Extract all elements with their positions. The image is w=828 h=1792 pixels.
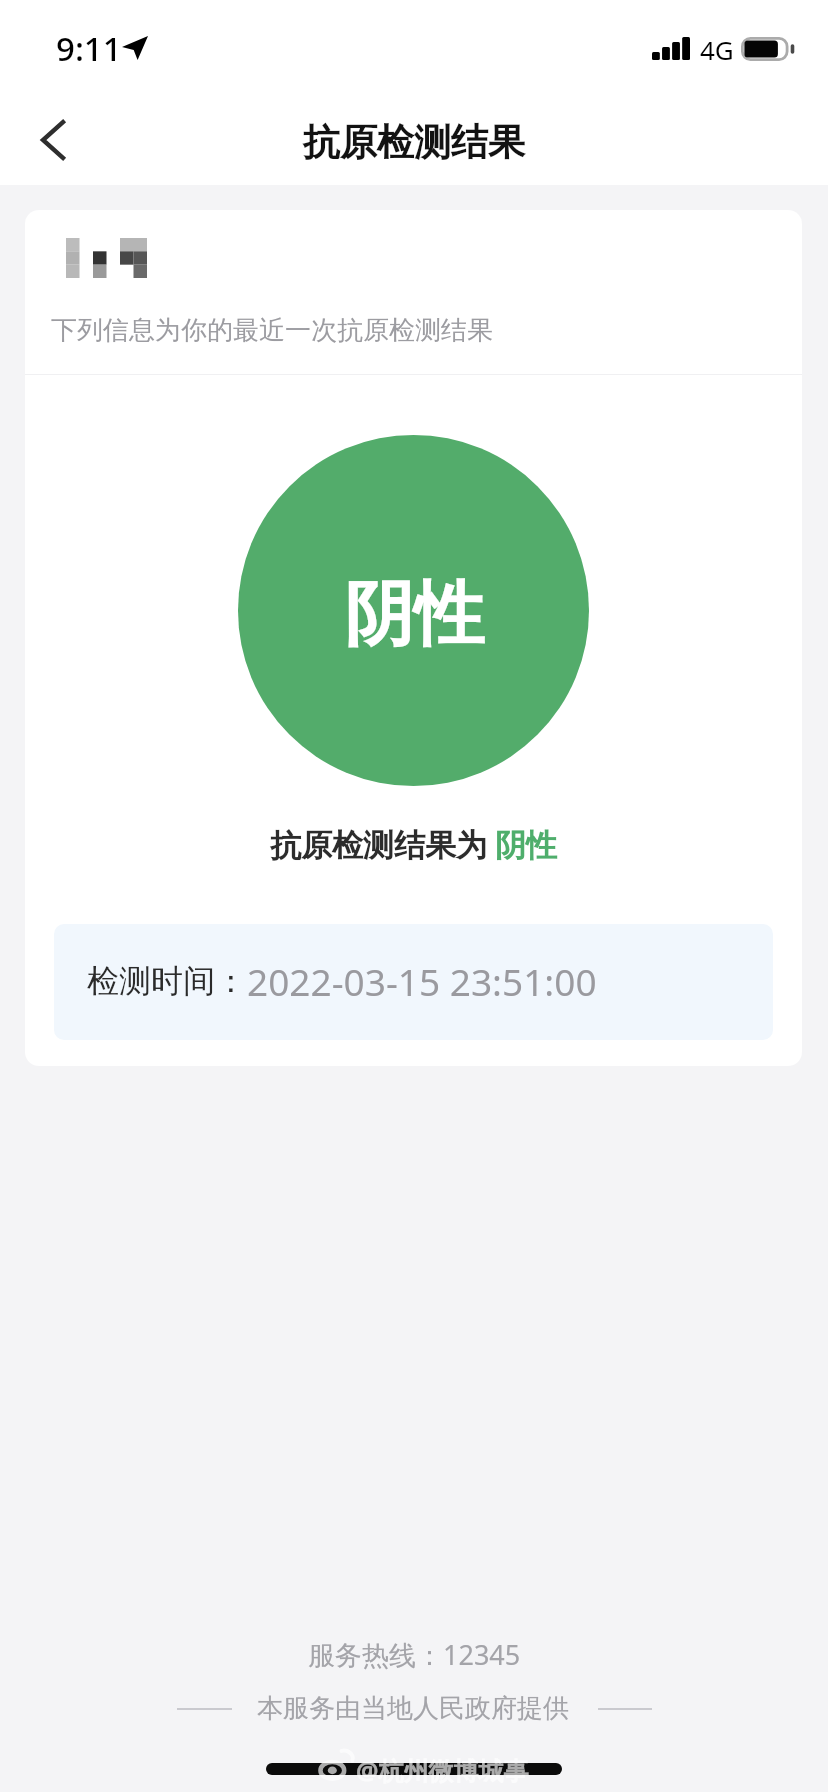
staticText: 9:11 [56,26,122,71]
staticText: 服务热线：12345 [308,1636,521,1673]
staticText: 本服务由当地人民政府提供 [257,1692,569,1725]
staticText: @杭州微博城事 [356,1753,529,1787]
staticText: 阴性 [344,571,484,659]
staticText: 4G [700,32,734,67]
staticText: 检测时间： [87,961,247,1001]
button[interactable]: Back [0,94,92,185]
staticText: 2022-03-15 23:51:00 [247,956,597,1006]
staticText: 下列信息为你的最近一次抗原检测结果 [51,314,493,347]
staticText: 抗原检测结果为 阴性 [270,823,558,865]
staticText: 抗原检测结果 [303,119,525,166]
